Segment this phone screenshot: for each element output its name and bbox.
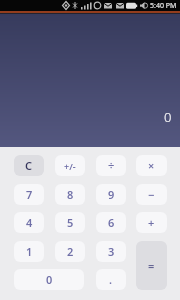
staticText: = — [148, 258, 155, 273]
staticText: C — [25, 158, 33, 173]
staticText: 6 — [108, 215, 115, 230]
staticText: . — [109, 272, 113, 287]
button[interactable]: 5 — [55, 212, 85, 233]
button[interactable]: 3 — [96, 241, 126, 262]
staticText: 9 — [108, 187, 115, 202]
staticText: 5:40 PM — [150, 1, 177, 11]
staticText: 0 — [46, 272, 53, 287]
button[interactable]: 2 — [55, 241, 85, 262]
button[interactable]: × — [136, 155, 167, 176]
button[interactable]: = — [136, 241, 167, 290]
staticText: 4 — [26, 215, 33, 230]
button[interactable]: 6 — [96, 212, 126, 233]
button[interactable]: − — [136, 184, 167, 205]
button[interactable]: ÷ — [96, 155, 126, 176]
button[interactable]: 7 — [14, 184, 44, 205]
staticText: + — [148, 215, 155, 230]
staticText: ÷ — [108, 158, 115, 173]
button[interactable]: + — [136, 212, 167, 233]
staticText: 7 — [26, 187, 33, 202]
button[interactable]: 4 — [14, 212, 44, 233]
staticText: − — [148, 187, 155, 202]
button[interactable]: 8 — [55, 184, 85, 205]
staticText: 8 — [67, 187, 74, 202]
button[interactable]: 1 — [14, 241, 44, 262]
staticText: 0 — [164, 108, 172, 126]
button[interactable]: 9 — [96, 184, 126, 205]
staticText: 1 — [26, 244, 33, 259]
button[interactable]: C — [14, 155, 44, 176]
staticText: +/- — [64, 160, 76, 172]
staticText: × — [148, 158, 155, 173]
staticText: 2 — [67, 244, 74, 259]
staticText: 3 — [108, 244, 115, 259]
button[interactable]: . — [96, 269, 126, 290]
button[interactable]: +/- — [55, 155, 85, 176]
button[interactable]: 0 — [14, 269, 84, 290]
staticText: 5 — [67, 215, 74, 230]
